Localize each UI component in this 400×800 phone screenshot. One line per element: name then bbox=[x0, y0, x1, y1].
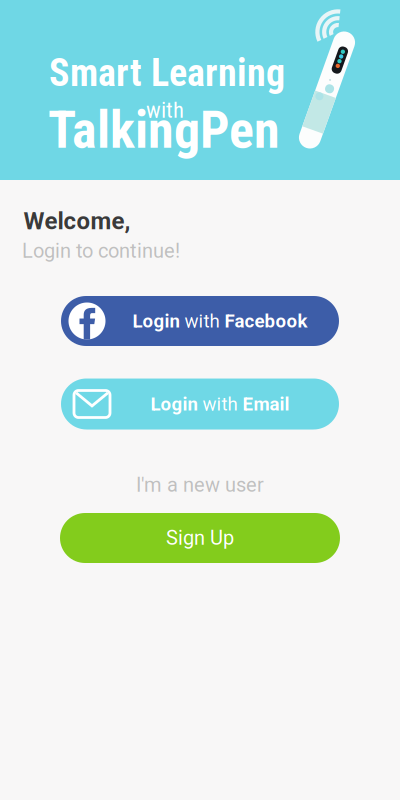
staticText: Sign Up bbox=[166, 526, 234, 550]
staticText: Login with Email bbox=[150, 393, 289, 415]
button[interactable]: Login with Facebook bbox=[61, 296, 339, 346]
button[interactable]: Sign Up bbox=[60, 513, 340, 563]
staticText: I'm a new user bbox=[136, 473, 264, 497]
staticText: with bbox=[146, 97, 184, 123]
staticText: TalkingPen bbox=[48, 99, 280, 160]
staticText: Login to continue! bbox=[22, 239, 180, 263]
staticText: Welcome, bbox=[23, 207, 130, 235]
button[interactable]: Login with Email bbox=[61, 378, 339, 429]
staticText: Login with Facebook bbox=[132, 310, 307, 332]
staticText: Smart Learning bbox=[49, 51, 285, 95]
